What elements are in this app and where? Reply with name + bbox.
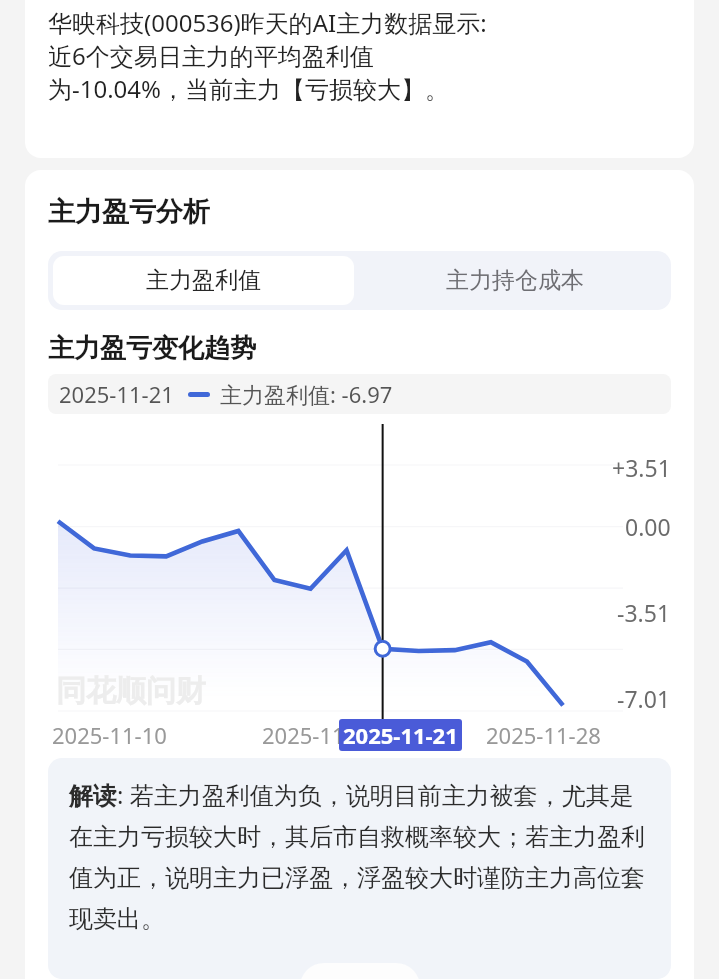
staticText: 同花顺问财 — [56, 672, 206, 710]
button[interactable]: 主力持仓成本 — [359, 251, 671, 310]
staticText: 主力盈亏变化趋势 — [48, 332, 256, 365]
button[interactable]: 主力盈利值 — [53, 256, 354, 305]
staticText: 0.00 — [625, 511, 671, 542]
staticText: -7.01 — [617, 683, 671, 714]
staticText: 主力盈利值 — [146, 266, 261, 295]
staticText: 2025-11-28 — [486, 720, 601, 750]
button[interactable]: 华映科技(000536)昨天的AI主力数据显示: — [25, 0, 694, 158]
button[interactable]: 解读: 若主力盈利值为负，说明目前主力被套，尤其是在主力亏损较大时，其后市自救概… — [48, 758, 671, 979]
staticText: 2025-11-17 — [262, 720, 377, 750]
staticText: 2025-11-10 — [52, 720, 167, 750]
staticText: 解读: 若主力盈利值为负，说明目前主力被套，尤其是在主力亏损较大时，其后市自救概… — [69, 778, 657, 934]
staticText: +3.51 — [612, 452, 671, 483]
staticText: 为-10.04%，当前主力【亏损较大】。 — [48, 72, 450, 105]
staticText: 2025-11-21 — [59, 379, 174, 409]
staticText: 主力盈亏分析 — [48, 195, 210, 229]
staticText: 主力持仓成本 — [446, 266, 584, 295]
staticText: 主力盈利值: -6.97 — [220, 379, 393, 409]
staticText: 华映科技(000536)昨天的AI主力数据显示: — [48, 6, 487, 39]
staticText: 近6个交易日主力的平均盈利值 — [48, 39, 374, 72]
staticText: 2025-11-21 — [343, 720, 458, 750]
staticText: -3.51 — [617, 597, 671, 628]
